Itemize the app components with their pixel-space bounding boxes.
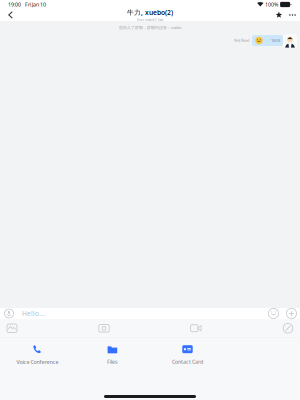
staticText: 19:00 Fri Jan 10: [8, 1, 46, 8]
staticText: Not Read: [234, 37, 249, 43]
staticText: Hello...: [22, 309, 45, 318]
button[interactable]: More: [286, 9, 299, 21]
button[interactable]: Mute: [276, 321, 300, 335]
staticText: 牛力, xuebo(2): [127, 8, 173, 17]
staticText: Encrypted Chat: [137, 17, 163, 22]
button[interactable]: Hello...: [18, 308, 264, 319]
button[interactable]: Photos: [0, 321, 24, 335]
button[interactable]: Video: [184, 321, 208, 335]
button[interactable]: Voice message: [0, 308, 18, 319]
button[interactable]: Files: [75, 342, 150, 368]
staticText: Contact Card: [172, 358, 203, 365]
staticText: 您加入了群聊，群聊内还有：xuebo: [119, 25, 181, 30]
button[interactable]: More options: [283, 308, 300, 319]
staticText: 100%: [265, 1, 278, 8]
staticText: 18:53: [271, 38, 280, 43]
button[interactable]: Back: [2, 9, 19, 21]
button[interactable]: Camera: [92, 321, 116, 335]
button[interactable]: Voice Conference: [0, 342, 75, 368]
button[interactable]: Contact Card: [150, 342, 225, 368]
button[interactable]: Favorite: [272, 9, 286, 21]
staticText: Voice Conference: [16, 358, 58, 365]
button[interactable]: Emoji: [264, 308, 283, 319]
staticText: Files: [107, 358, 118, 365]
